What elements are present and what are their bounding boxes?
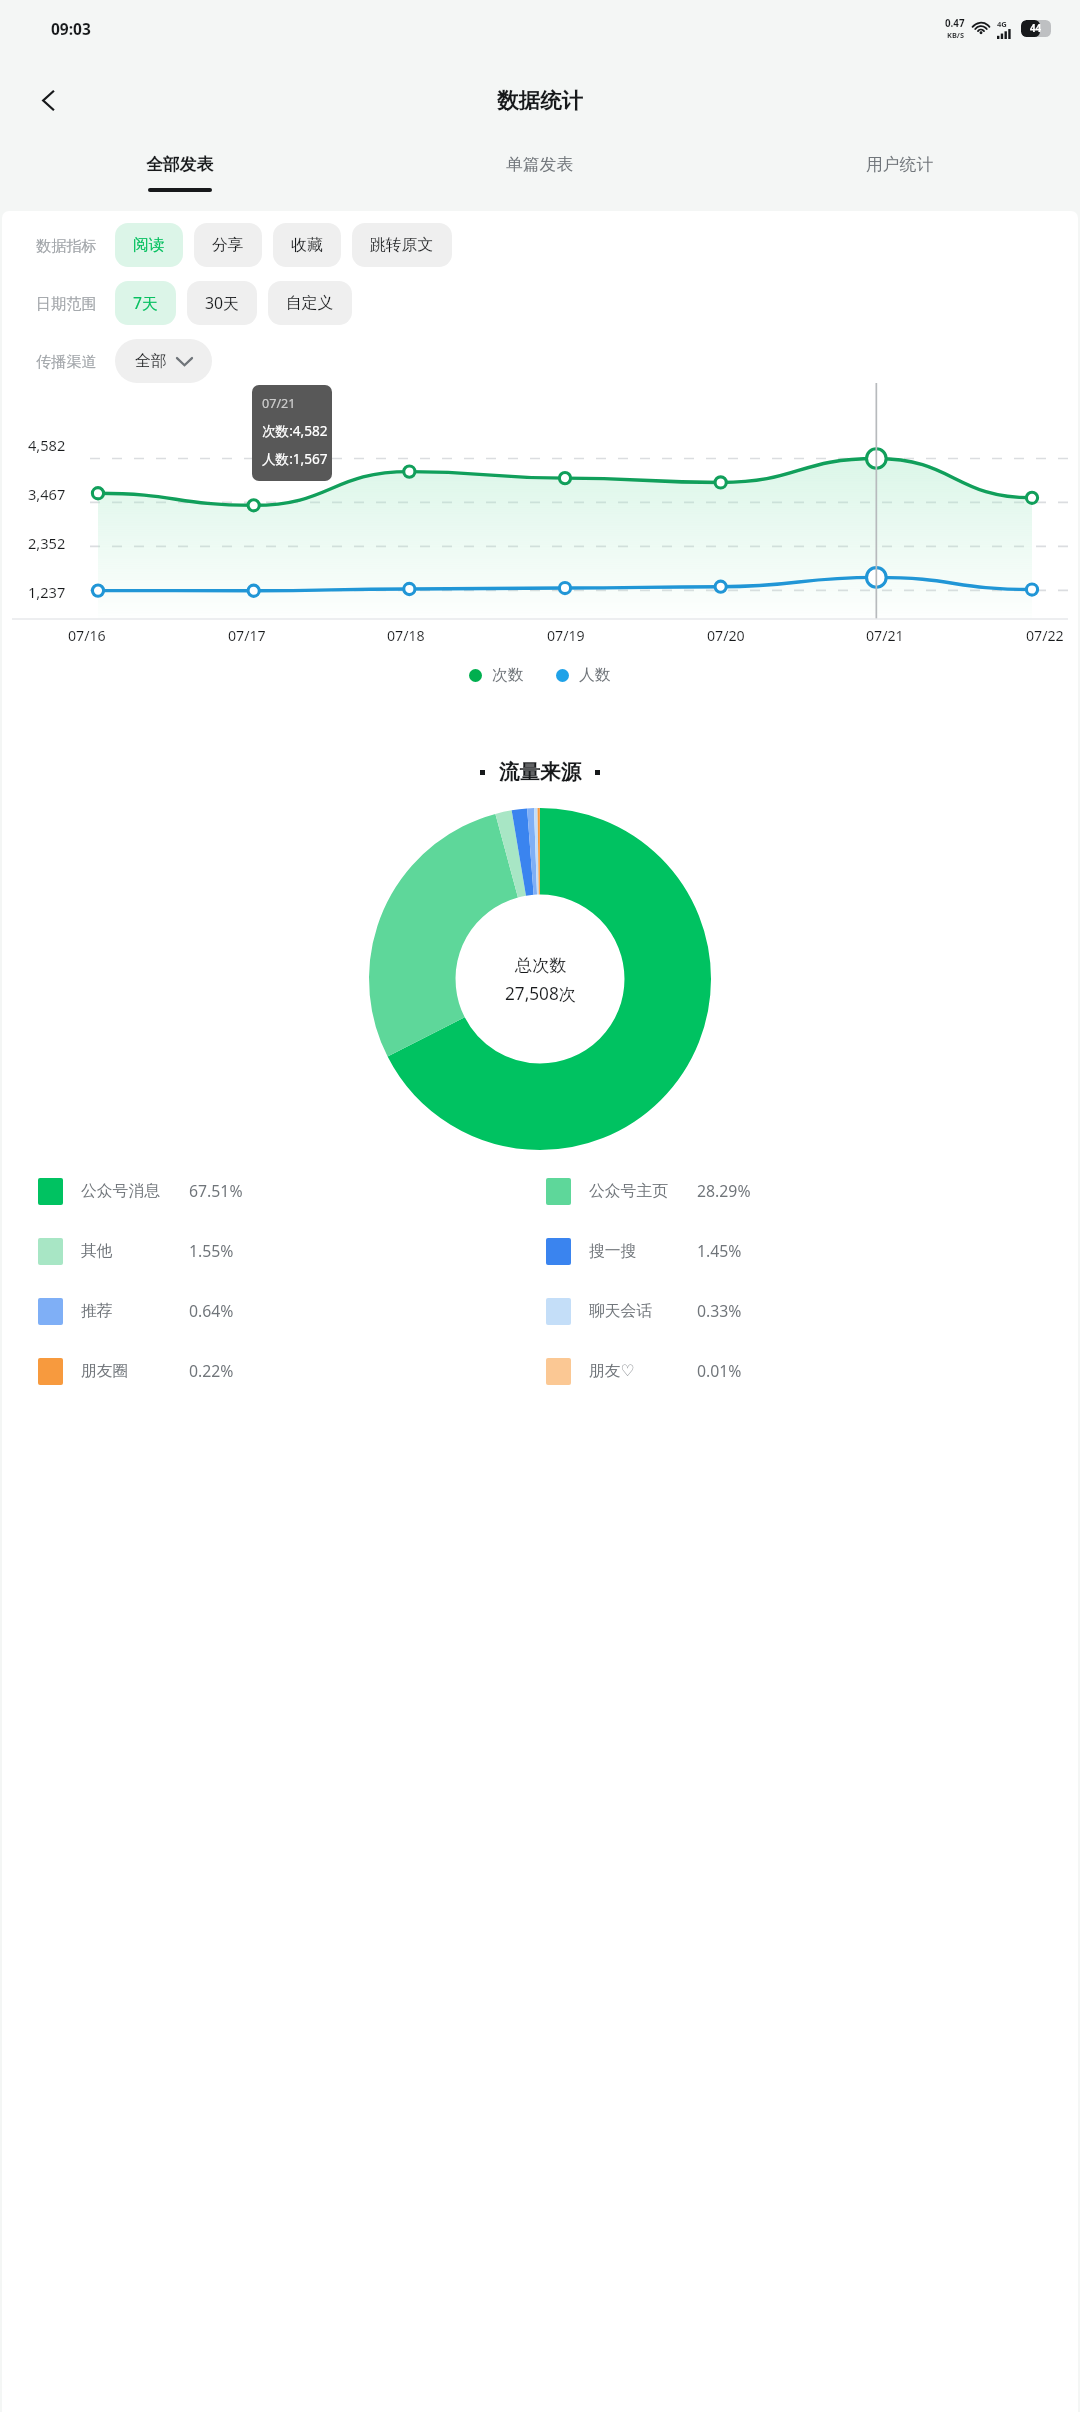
- staticText: 全部: [135, 351, 167, 371]
- button[interactable]: 其他: [38, 1221, 546, 1281]
- staticText: 1,237: [28, 582, 66, 602]
- staticText: 07/20: [707, 626, 745, 645]
- staticText: 0.47: [945, 17, 965, 30]
- staticText: 数据指标: [36, 236, 97, 255]
- button[interactable]: 跳转原文: [352, 223, 452, 267]
- staticText: 4,582: [28, 435, 66, 455]
- staticText: 3,467: [28, 484, 66, 504]
- staticText: KB/S: [947, 30, 964, 40]
- staticText: 0.01%: [697, 1360, 742, 1382]
- staticText: 搜一搜: [589, 1241, 637, 1261]
- staticText: 聊天会话: [589, 1301, 653, 1321]
- staticText: 跳转原文: [370, 235, 434, 255]
- staticText: 其他: [81, 1241, 113, 1261]
- staticText: 07/22: [1026, 626, 1064, 645]
- staticText: 1.55%: [189, 1240, 234, 1262]
- button[interactable]: 推荐: [38, 1281, 546, 1341]
- staticText: 27,508次: [505, 982, 576, 1005]
- staticText: 2,352: [28, 533, 66, 553]
- staticText: 用户统计: [866, 154, 934, 175]
- button[interactable]: 30天: [187, 281, 257, 325]
- staticText: 07/16: [68, 626, 106, 645]
- button[interactable]: 朋友圈: [38, 1341, 546, 1401]
- staticText: 07/17: [228, 626, 266, 645]
- button[interactable]: 用户统计: [720, 143, 1080, 211]
- button[interactable]: 收藏: [273, 223, 341, 267]
- staticText: 0.22%: [189, 1360, 234, 1382]
- staticText: 推荐: [81, 1301, 113, 1321]
- staticText: 07/21: [262, 395, 296, 412]
- staticText: 收藏: [291, 235, 323, 255]
- button[interactable]: 公众号消息: [38, 1161, 546, 1221]
- staticText: 阅读: [133, 235, 165, 255]
- button[interactable]: 全部发表: [0, 143, 360, 211]
- staticText: 人数:1,567: [262, 449, 328, 468]
- staticText: 自定义: [286, 293, 334, 313]
- staticText: 全部发表: [146, 154, 214, 175]
- staticText: 次数: [492, 665, 524, 685]
- button[interactable]: 单篇发表: [360, 143, 720, 211]
- staticText: 44: [1030, 22, 1042, 35]
- staticText: 1.45%: [697, 1240, 742, 1262]
- staticText: 07/21: [866, 626, 904, 645]
- staticText: 次数:4,582: [262, 421, 328, 440]
- button[interactable]: 聊天会话: [546, 1281, 1054, 1341]
- staticText: 0.64%: [189, 1300, 234, 1322]
- staticText: 分享: [212, 235, 244, 255]
- staticText: 朋友圈: [81, 1361, 129, 1381]
- staticText: 单篇发表: [506, 154, 574, 175]
- staticText: 07/18: [387, 626, 425, 645]
- button[interactable]: 自定义: [268, 281, 352, 325]
- button[interactable]: 全部: [115, 339, 212, 383]
- button[interactable]: 搜一搜: [546, 1221, 1054, 1281]
- staticText: 流量来源: [499, 759, 581, 785]
- staticText: 67.51%: [189, 1180, 243, 1202]
- button[interactable]: 分享: [194, 223, 262, 267]
- button[interactable]: 阅读: [115, 223, 183, 267]
- staticText: 传播渠道: [36, 352, 97, 371]
- staticText: 7天: [133, 292, 158, 314]
- button[interactable]: Back: [22, 74, 74, 126]
- staticText: 30天: [205, 292, 239, 314]
- staticText: 07/19: [547, 626, 585, 645]
- button[interactable]: 朋友♡: [546, 1341, 1054, 1401]
- staticText: 日期范围: [36, 294, 97, 313]
- staticText: 总次数: [515, 954, 567, 976]
- staticText: 09:03: [51, 18, 91, 39]
- staticText: 公众号消息: [81, 1181, 160, 1201]
- staticText: 28.29%: [697, 1180, 751, 1202]
- staticText: 人数: [579, 665, 611, 685]
- staticText: 数据统计: [497, 87, 583, 114]
- button[interactable]: 公众号主页: [546, 1161, 1054, 1221]
- staticText: 公众号主页: [589, 1181, 668, 1201]
- staticText: 4G: [997, 19, 1007, 29]
- staticText: 0.33%: [697, 1300, 742, 1322]
- staticText: 朋友♡: [589, 1361, 635, 1381]
- button[interactable]: 7天: [115, 281, 176, 325]
